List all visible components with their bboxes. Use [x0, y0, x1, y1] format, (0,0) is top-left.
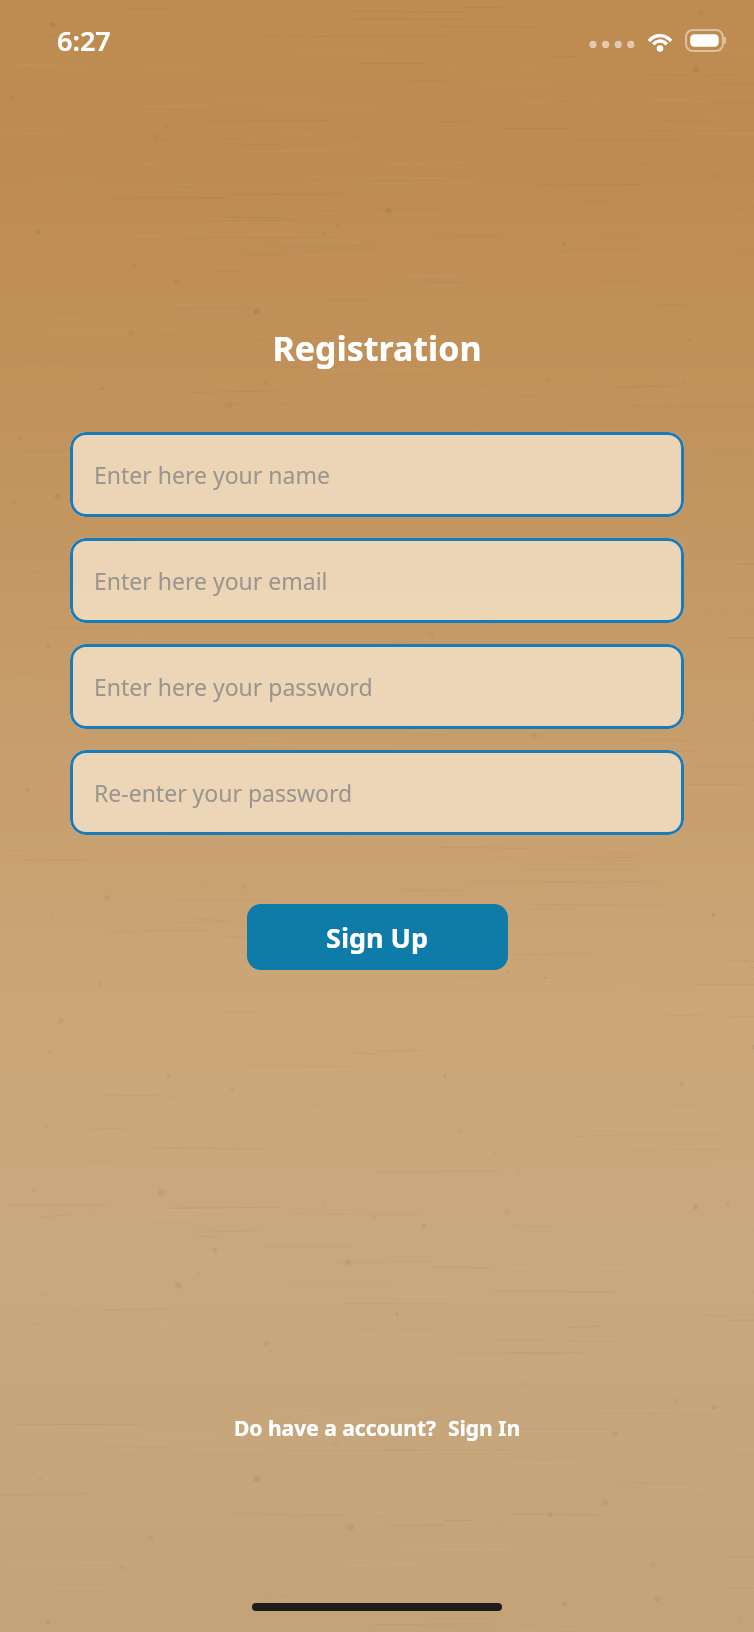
staticText: Enter here your email: [94, 565, 328, 596]
staticText: Sign In: [448, 1414, 521, 1443]
staticText: 6:27: [57, 22, 111, 59]
button[interactable]: Sign Up: [247, 904, 508, 970]
button[interactable]: Enter here your name: [70, 432, 684, 517]
staticText: Enter here your password: [94, 671, 373, 702]
button[interactable]: Enter here your email: [70, 538, 684, 623]
staticText: Enter here your name: [94, 459, 330, 490]
button[interactable]: Enter here your password: [70, 644, 684, 729]
staticText: Registration: [272, 325, 482, 371]
button[interactable]: Re-enter your password: [70, 750, 684, 835]
staticText: Re-enter your password: [94, 777, 353, 808]
staticText: Sign Up: [326, 919, 429, 956]
button[interactable]: Do have a account?: [226, 1408, 529, 1449]
staticText: Do have a account?: [234, 1414, 437, 1443]
